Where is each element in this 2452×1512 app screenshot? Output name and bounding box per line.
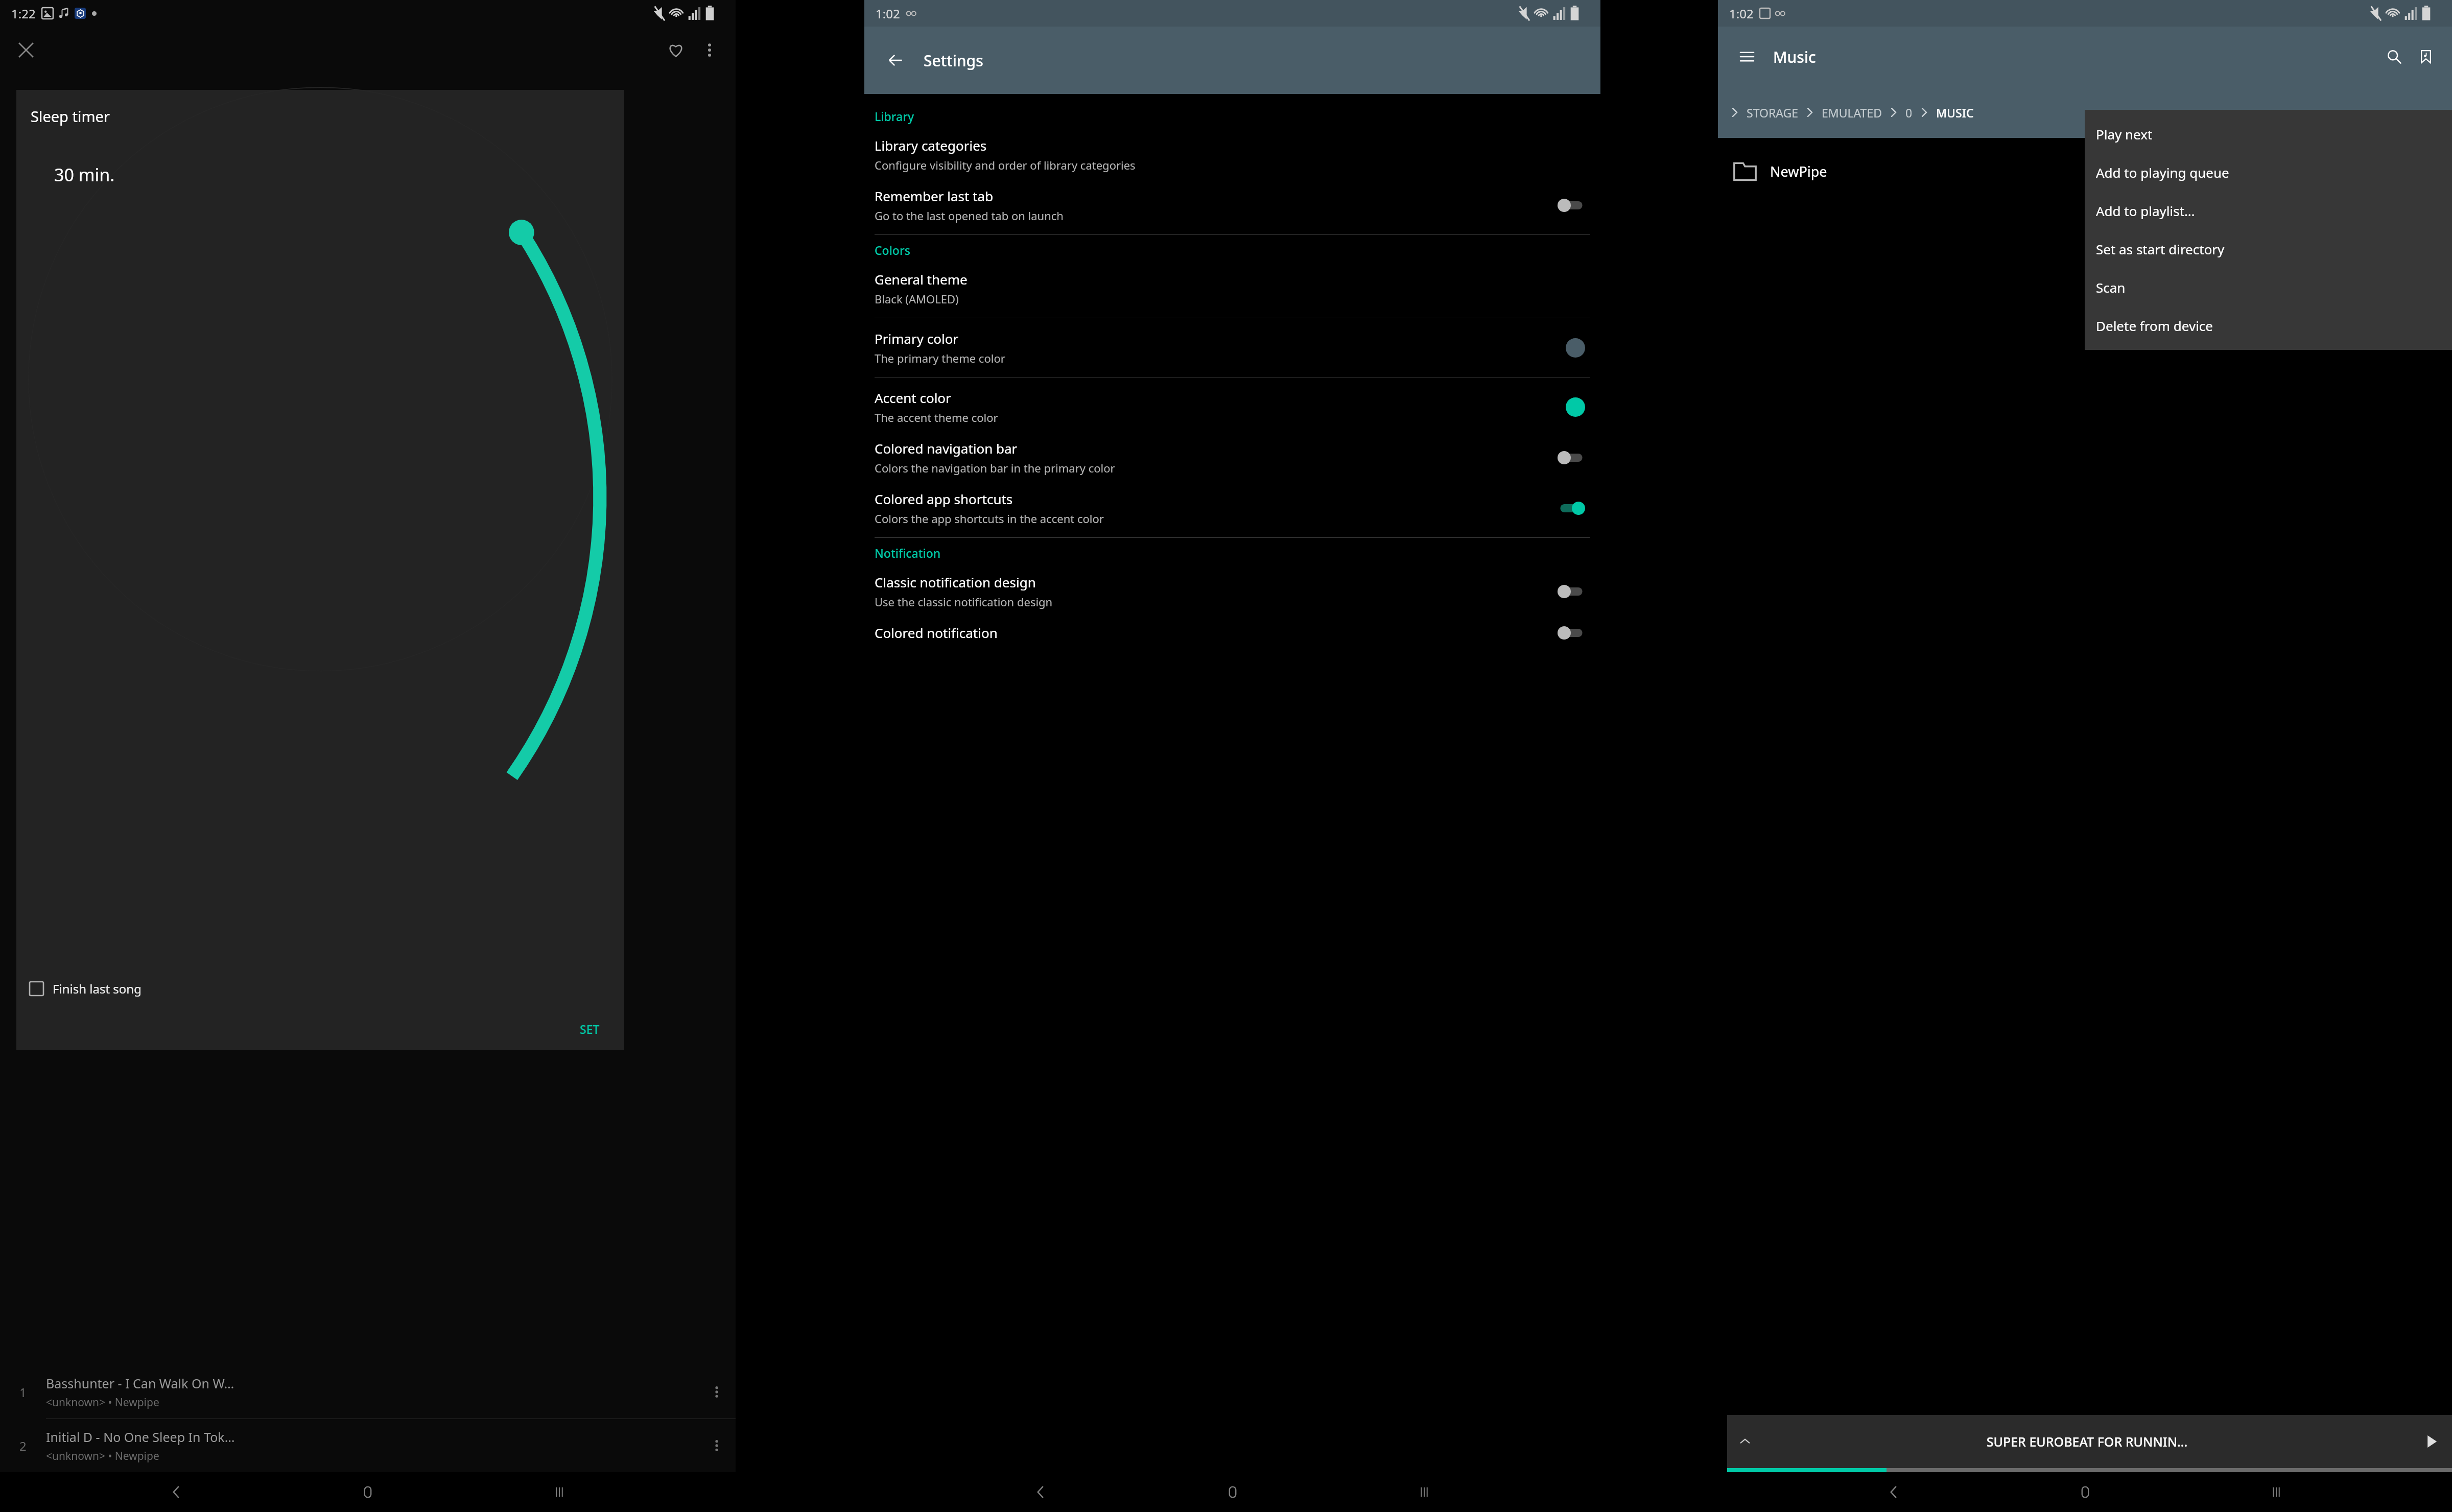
staticText: 30 min. [54, 163, 115, 186]
staticText: Initial D - No One Sleep In Tok… [46, 1428, 235, 1446]
staticText: Colored app shortcuts [875, 490, 1013, 508]
button[interactable]: Scan [2085, 268, 2452, 306]
button[interactable]: 0 [1900, 102, 1918, 124]
staticText: Remember last tab [875, 187, 994, 205]
button[interactable]: Search [2378, 41, 2410, 73]
button[interactable]: Remember last tab [875, 180, 1590, 230]
button[interactable]: Open navigation menu [1731, 41, 1763, 73]
staticText: Notification [875, 545, 941, 561]
button[interactable]: Pick color [1566, 338, 1585, 358]
button[interactable]: Song options [698, 1365, 736, 1419]
staticText: NewPipe [1770, 162, 1827, 181]
staticText: SUPER EUROBEAT FOR RUNNIN… [1763, 1433, 2411, 1450]
staticText: Colors the navigation bar in the primary… [875, 460, 1115, 476]
button[interactable] [1558, 502, 1585, 515]
button[interactable]: Add to playing queue [2085, 153, 2452, 192]
button[interactable]: Close [9, 33, 43, 67]
button[interactable]: SET [573, 1016, 607, 1042]
staticText: STORAGE [1747, 105, 1798, 121]
button[interactable]: General theme [875, 263, 1590, 314]
button[interactable]: Pick color [1566, 397, 1585, 417]
button[interactable] [1558, 626, 1585, 640]
button[interactable]: Back [161, 1477, 192, 1507]
staticText: Delete from device [2096, 317, 2213, 335]
button[interactable]: Colored notification [875, 617, 1590, 649]
staticText: 1:22 [11, 5, 36, 22]
button[interactable]: More options [693, 33, 726, 67]
button[interactable]: Recents [2261, 1477, 2292, 1507]
button[interactable]: Finish last song [16, 970, 624, 1007]
button[interactable]: Song options [698, 1419, 736, 1472]
staticText: EMULATED [1822, 105, 1882, 121]
button[interactable]: Colored navigation bar [875, 432, 1590, 483]
button[interactable]: Home [1217, 1477, 1248, 1507]
staticText: <unknown> • Newpipe [46, 1395, 159, 1410]
staticText: 1:02 [876, 5, 900, 22]
button[interactable]: Bookmarks [2410, 41, 2442, 73]
staticText: Use the classic notification design [875, 594, 1053, 609]
staticText: Colors the app shortcuts in the accent c… [875, 511, 1104, 526]
button[interactable]: Set as start directory [2085, 230, 2452, 268]
staticText: Primary color [875, 329, 959, 347]
staticText: Colored navigation bar [875, 439, 1018, 457]
button[interactable]: Recents [544, 1477, 575, 1507]
staticText: Sleep timer [31, 106, 110, 126]
staticText: Accent color [875, 389, 951, 407]
button[interactable]: Recents [1409, 1477, 1440, 1507]
staticText: Set as start directory [2096, 240, 2225, 258]
button[interactable]: Home [352, 1477, 383, 1507]
staticText: Colors [875, 242, 910, 258]
staticText: Basshunter - I Can Walk On W… [46, 1375, 234, 1392]
button[interactable]: Primary color [875, 322, 1590, 373]
button[interactable]: Library categories [875, 129, 1590, 180]
staticText: SET [580, 1021, 600, 1037]
button[interactable]: STORAGE [1741, 102, 1803, 124]
button[interactable]: MUSIC [1931, 102, 1979, 124]
button[interactable]: Favorite [659, 33, 693, 67]
staticText: 0 [1905, 105, 1913, 121]
staticText: 2 [19, 1437, 27, 1454]
button[interactable]: Back [878, 42, 913, 78]
button[interactable]: Play next [2085, 115, 2452, 153]
button[interactable]: Play [2411, 1415, 2452, 1468]
button[interactable]: EMULATED [1817, 102, 1887, 124]
button[interactable]: Add to playlist… [2085, 192, 2452, 230]
staticText: Colored notification [875, 624, 998, 642]
staticText: Library categories [875, 136, 987, 154]
button[interactable] [1558, 585, 1585, 598]
staticText: General theme [875, 270, 968, 288]
staticText: Add to playing queue [2096, 163, 2229, 181]
button[interactable]: Accent color [875, 382, 1590, 432]
button[interactable]: Back [1878, 1477, 1909, 1507]
staticText: Finish last song [53, 980, 142, 997]
staticText: Configure visibility and order of librar… [875, 157, 1136, 173]
button[interactable]: Expand player [1727, 1415, 1763, 1468]
button[interactable]: Delete from device [2085, 306, 2452, 345]
button[interactable] [1558, 451, 1585, 464]
button[interactable]: Classic notification design [875, 566, 1590, 617]
staticText: 1 [19, 1384, 27, 1401]
staticText: Music [1773, 46, 1816, 67]
staticText: <unknown> • Newpipe [46, 1449, 159, 1463]
staticText: MUSIC [1936, 105, 1974, 121]
staticText: The primary theme color [875, 350, 1005, 366]
staticText: The accent theme color [875, 410, 998, 425]
button[interactable] [1558, 199, 1585, 212]
button[interactable]: 1 [0, 1365, 736, 1419]
staticText: Library [875, 108, 914, 124]
button[interactable]: Home [2070, 1477, 2101, 1507]
staticText: Add to playlist… [2096, 202, 2195, 220]
button[interactable]: Back [1025, 1477, 1056, 1507]
staticText: Go to the last opened tab on launch [875, 208, 1064, 223]
staticText: 1:02 [1729, 5, 1754, 22]
staticText: Play next [2096, 125, 2153, 143]
staticText: Settings [924, 50, 983, 71]
staticText: Scan [2096, 278, 2126, 296]
button[interactable]: Expand player [1727, 1415, 2452, 1468]
button[interactable]: NewPipe [1718, 138, 2452, 204]
staticText: Black (AMOLED) [875, 291, 959, 306]
button[interactable]: Colored app shortcuts [875, 483, 1590, 533]
staticText: Classic notification design [875, 573, 1036, 591]
button[interactable]: 2 [0, 1419, 736, 1472]
